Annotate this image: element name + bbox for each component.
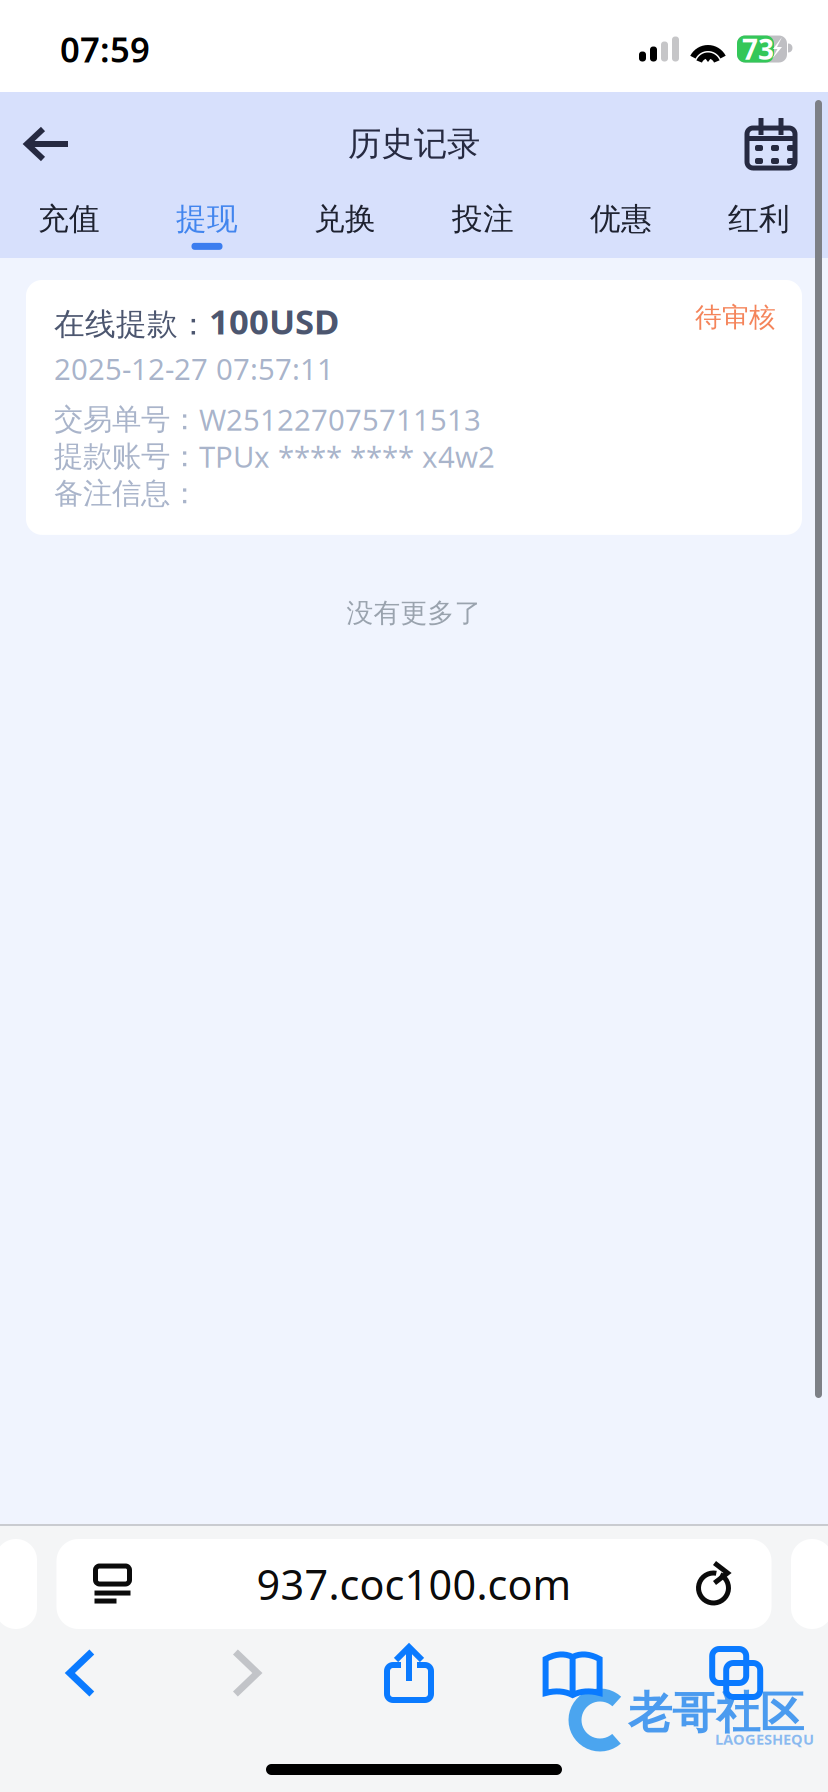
staticText: TPUx **** **** x4w2 <box>199 437 495 476</box>
button[interactable]: Forward <box>223 1647 267 1699</box>
button[interactable]: Calendar <box>742 92 828 196</box>
staticText: 老哥社区 <box>628 1686 804 1740</box>
staticText: LAOGESHEQU <box>715 1729 814 1749</box>
staticText: 73 <box>742 30 774 68</box>
staticText: 历史记录 <box>348 123 480 164</box>
staticText: 备注信息： <box>54 475 199 511</box>
staticText: 提款账号： <box>54 438 199 474</box>
staticText: 优惠 <box>590 200 652 238</box>
staticText: 红利 <box>728 200 790 238</box>
staticText: 兑换 <box>314 200 376 238</box>
staticText: 待审核 <box>695 301 776 334</box>
button[interactable]: 兑换 <box>276 196 414 258</box>
button[interactable]: 投注 <box>414 196 552 258</box>
button[interactable]: 提现 <box>138 196 276 258</box>
staticText: 交易单号： <box>54 401 199 437</box>
button[interactable]: 937.coc100.com <box>56 1539 771 1629</box>
staticText: 提现 <box>176 200 238 238</box>
button[interactable]: 充值 <box>0 196 138 258</box>
staticText: 07:59 <box>60 26 150 72</box>
button[interactable]: Tabs <box>710 1647 762 1699</box>
button[interactable]: 优惠 <box>552 196 690 258</box>
staticText: 投注 <box>452 200 514 238</box>
button[interactable]: Share <box>383 1643 435 1703</box>
staticText: 2025-12-27 07:57:11 <box>54 349 334 388</box>
button[interactable]: 红利 <box>690 196 828 258</box>
staticText: 充值 <box>38 200 100 238</box>
staticText: 在线提款： <box>54 305 209 343</box>
button[interactable]: Bookmarks <box>543 1648 603 1698</box>
staticText: W251227075711513 <box>199 400 481 439</box>
staticText: 100USD <box>209 298 339 344</box>
staticText: 937.coc100.com <box>256 1557 571 1611</box>
button[interactable]: Back <box>60 1647 104 1699</box>
button[interactable]: Back <box>0 92 96 196</box>
staticText: 没有更多了 <box>346 597 481 630</box>
